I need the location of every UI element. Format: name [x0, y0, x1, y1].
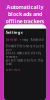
staticText: Automatically [6, 3, 43, 10]
staticText: Advanced [31, 38, 44, 41]
staticText: Learn more [6, 68, 21, 71]
staticText: phone makes and silently removes [6, 52, 41, 59]
staticText: ads and trackers before they load. [6, 59, 43, 66]
staticText: Settings [6, 30, 23, 35]
staticText: block ads and [8, 10, 42, 18]
staticText: General [6, 38, 17, 41]
staticText: offline trackers [5, 17, 44, 25]
staticText: Blokada filters every request your [6, 44, 44, 52]
staticText: Privacy [20, 38, 28, 41]
